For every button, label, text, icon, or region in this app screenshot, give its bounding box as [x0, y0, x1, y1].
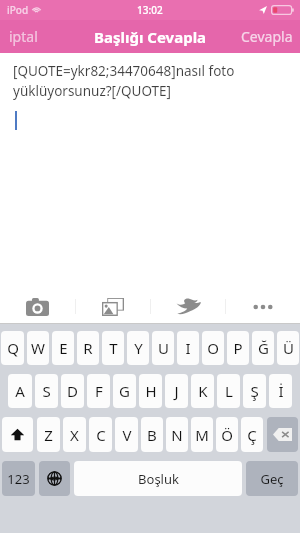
- staticText: T: [109, 338, 118, 358]
- staticText: G: [119, 381, 130, 401]
- staticText: X: [70, 425, 79, 445]
- staticText: Başlığı Cevapla: [94, 27, 207, 47]
- staticText: İ: [278, 381, 284, 401]
- button[interactable]: K: [191, 374, 214, 408]
- staticText: U: [158, 338, 169, 358]
- staticText: R: [83, 338, 93, 358]
- staticText: E: [59, 338, 68, 358]
- staticText: B: [147, 425, 157, 445]
- staticText: Cevapla: [241, 27, 293, 46]
- staticText: O: [207, 338, 219, 358]
- button[interactable]: D: [61, 374, 84, 408]
- staticText: Ö: [221, 425, 233, 445]
- button[interactable]: H: [139, 374, 162, 408]
- button[interactable]: Twitter: [151, 289, 225, 324]
- staticText: 123: [7, 470, 30, 488]
- button[interactable]: Next keyboard: [39, 461, 70, 496]
- staticText: Z: [44, 425, 53, 445]
- staticText: iPod: [7, 3, 29, 17]
- button[interactable]: Camera: [0, 289, 75, 324]
- button[interactable]: R: [77, 331, 99, 365]
- staticText: I: [185, 338, 191, 358]
- button[interactable]: Ş: [243, 374, 266, 408]
- button[interactable]: Geç: [246, 461, 298, 496]
- button[interactable]: V: [115, 417, 138, 452]
- button[interactable]: 123: [2, 461, 35, 496]
- staticText: W: [31, 338, 45, 358]
- button[interactable]: Ğ: [252, 331, 274, 365]
- button[interactable]: Y: [127, 331, 149, 365]
- staticText: Ş: [250, 381, 259, 401]
- staticText: D: [67, 381, 78, 401]
- staticText: [QUOTE=ykr82;34470648]nasıl foto yüklüyo…: [13, 62, 290, 100]
- staticText: S: [42, 381, 51, 401]
- staticText: F: [95, 381, 103, 401]
- button[interactable]: F: [87, 374, 110, 408]
- staticText: 13:02: [137, 3, 163, 17]
- staticText: Geç: [260, 470, 284, 488]
- button[interactable]: G: [113, 374, 136, 408]
- button[interactable]: M: [191, 417, 213, 452]
- button[interactable]: B: [141, 417, 163, 452]
- staticText: J: [174, 381, 179, 401]
- button[interactable]: I: [177, 331, 199, 365]
- button[interactable]: O: [202, 331, 224, 365]
- button[interactable]: E: [52, 331, 74, 365]
- button[interactable]: U: [152, 331, 174, 365]
- button[interactable]: Photo library: [76, 289, 150, 324]
- staticText: Y: [134, 338, 143, 358]
- button[interactable]: Ü: [277, 331, 299, 365]
- button[interactable]: P: [227, 331, 249, 365]
- button[interactable]: S: [35, 374, 58, 408]
- staticText: K: [198, 381, 208, 401]
- button[interactable]: More options: [226, 289, 300, 324]
- button[interactable]: Q: [1, 331, 24, 365]
- staticText: M: [195, 425, 209, 445]
- button[interactable]: iptal: [0, 20, 47, 53]
- staticText: Ü: [283, 338, 294, 358]
- staticText: Ğ: [258, 338, 269, 358]
- button[interactable]: Ç: [241, 417, 263, 452]
- staticText: P: [233, 338, 243, 358]
- button[interactable]: N: [166, 417, 188, 452]
- staticText: Boşluk: [138, 470, 179, 488]
- staticText: Q: [7, 338, 19, 358]
- staticText: H: [145, 381, 157, 401]
- button[interactable]: W: [27, 331, 49, 365]
- button[interactable]: J: [165, 374, 188, 408]
- button[interactable]: C: [89, 417, 112, 452]
- staticText: iptal: [9, 27, 38, 46]
- button[interactable]: İ: [269, 374, 292, 408]
- staticText: N: [171, 425, 183, 445]
- button[interactable]: L: [217, 374, 240, 408]
- button[interactable]: Z: [37, 417, 60, 452]
- button[interactable]: A: [8, 374, 32, 408]
- staticText: L: [225, 381, 233, 401]
- staticText: Ç: [247, 425, 257, 445]
- button[interactable]: Cevapla: [234, 20, 300, 53]
- staticText: V: [122, 425, 132, 445]
- button[interactable]: Boşluk: [74, 461, 242, 496]
- button[interactable]: T: [102, 331, 124, 365]
- button[interactable]: Shift: [2, 417, 33, 452]
- button[interactable]: X: [63, 417, 86, 452]
- button[interactable]: Ö: [216, 417, 238, 452]
- staticText: C: [96, 425, 106, 445]
- button[interactable]: Backspace: [267, 417, 298, 452]
- staticText: A: [15, 381, 25, 401]
